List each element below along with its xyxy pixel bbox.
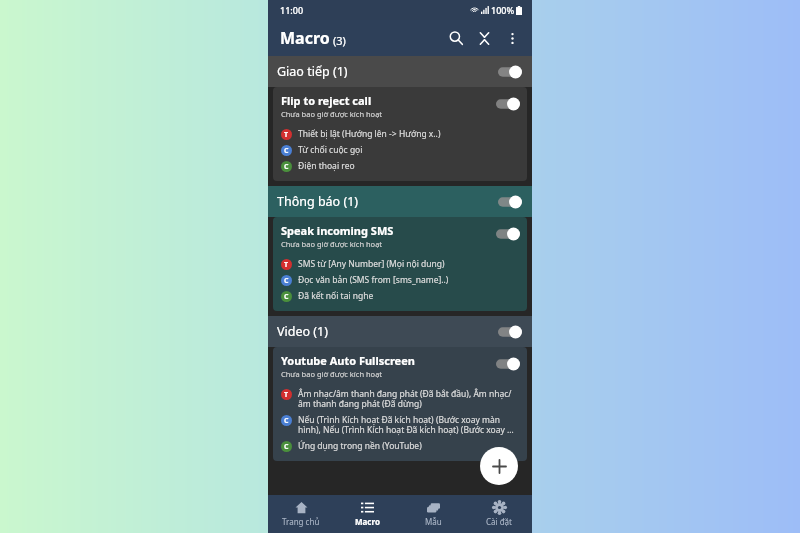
button[interactable] bbox=[495, 95, 521, 113]
staticText: C bbox=[284, 442, 289, 452]
button[interactable] bbox=[497, 63, 523, 81]
staticText: C bbox=[284, 146, 289, 156]
staticText: Chưa bao giờ được kích hoạt bbox=[281, 109, 383, 119]
button[interactable]: Search bbox=[442, 24, 470, 52]
button[interactable] bbox=[497, 193, 523, 211]
staticText: C bbox=[284, 292, 289, 302]
staticText: Cài đặt bbox=[486, 516, 512, 527]
staticText: Nếu (Trình Kích hoạt Đã kích hoạt) (Bước… bbox=[298, 414, 519, 436]
staticText: T bbox=[284, 130, 289, 140]
button[interactable]: Trang chủ bbox=[268, 495, 334, 533]
staticText: Âm nhạc/âm thanh đang phát (Đã bắt đầu),… bbox=[298, 388, 519, 410]
staticText: C bbox=[284, 416, 289, 426]
staticText: Điện thoại reo bbox=[298, 160, 519, 172]
staticText: 100% bbox=[491, 4, 515, 16]
staticText: T bbox=[284, 260, 289, 270]
staticText: Từ chối cuộc gọi bbox=[298, 144, 519, 156]
staticText: Video (1) bbox=[277, 323, 497, 340]
staticText: Mẫu bbox=[425, 516, 442, 527]
button[interactable]: Add macro bbox=[480, 447, 518, 485]
button[interactable] bbox=[495, 355, 521, 373]
button[interactable]: Youtube Auto Fullscreen bbox=[273, 347, 527, 461]
staticText: Ứng dụng trong nền (YouTube) bbox=[298, 440, 519, 452]
button[interactable]: Speak incoming SMS bbox=[273, 217, 527, 311]
staticText: C bbox=[284, 276, 289, 286]
staticText: Thông báo (1) bbox=[277, 193, 497, 210]
staticText: C bbox=[284, 162, 289, 172]
button[interactable] bbox=[495, 225, 521, 243]
staticText: Đã kết nối tai nghe bbox=[298, 290, 519, 302]
button[interactable]: Video (1) bbox=[268, 316, 532, 347]
staticText: Youtube Auto Fullscreen bbox=[281, 353, 415, 368]
button[interactable]: Collapse all bbox=[470, 24, 498, 52]
button[interactable] bbox=[497, 323, 523, 341]
staticText: Chưa bao giờ được kích hoạt bbox=[281, 369, 383, 379]
staticText: Đọc văn bản (SMS from [sms_name]..) bbox=[298, 274, 519, 286]
button[interactable]: Macro bbox=[334, 495, 400, 533]
staticText: SMS từ [Any Number] (Mọi nội dung) bbox=[298, 258, 519, 270]
button[interactable]: Mẫu bbox=[400, 495, 466, 533]
staticText: Flip to reject call bbox=[281, 93, 372, 108]
staticText: T bbox=[284, 390, 289, 400]
staticText: 11:00 bbox=[280, 4, 304, 16]
staticText: Giao tiếp (1) bbox=[277, 63, 497, 80]
staticText: Macro bbox=[355, 516, 380, 527]
button[interactable]: More options bbox=[498, 24, 526, 52]
staticText: Chưa bao giờ được kích hoạt bbox=[281, 239, 383, 249]
staticText: Trang chủ bbox=[282, 516, 320, 527]
button[interactable]: Thông báo (1) bbox=[268, 186, 532, 217]
button[interactable]: Giao tiếp (1) bbox=[268, 56, 532, 87]
button[interactable]: Cài đặt bbox=[466, 495, 532, 533]
staticText: Speak incoming SMS bbox=[281, 223, 394, 238]
button[interactable]: Flip to reject call bbox=[273, 87, 527, 181]
staticText: (3) bbox=[333, 33, 346, 48]
staticText: Macro bbox=[280, 27, 330, 49]
staticText: Thiết bị lật (Hướng lên -> Hướng x..) bbox=[298, 128, 519, 140]
